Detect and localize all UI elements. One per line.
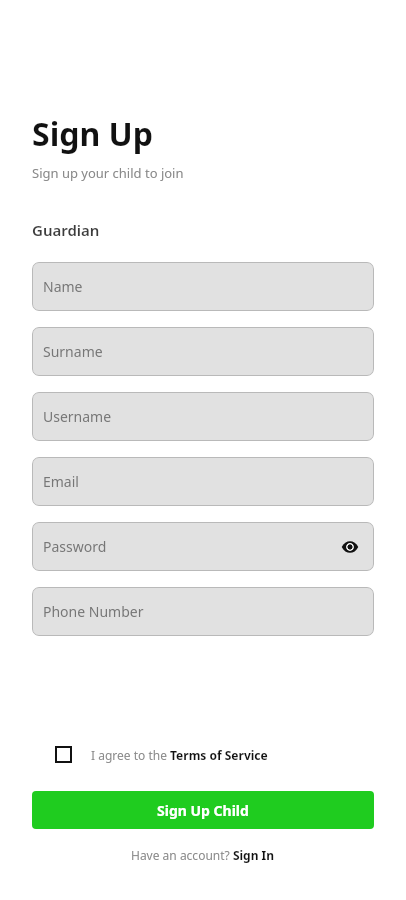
staticText: Sign Up <box>32 112 153 156</box>
staticText: I agree to the Terms of Service <box>91 747 268 763</box>
button[interactable]: Have an account? Sign In <box>0 847 406 863</box>
staticText: Surname <box>43 342 103 361</box>
staticText: Password <box>43 537 107 556</box>
button[interactable]: Surname <box>32 327 374 376</box>
button[interactable]: Show password <box>338 535 362 559</box>
button[interactable]: Password <box>32 522 374 571</box>
staticText: Sign Up Child <box>157 801 249 820</box>
staticText: Username <box>43 407 112 426</box>
button[interactable]: Name <box>32 262 374 311</box>
staticText: Have an account? Sign In <box>131 847 275 863</box>
staticText: Sign up your child to join <box>32 164 184 182</box>
staticText: Name <box>43 277 83 296</box>
staticText: Guardian <box>32 220 100 240</box>
button[interactable]: I agree to the Terms of Service <box>55 746 374 763</box>
staticText: Phone Number <box>43 602 144 621</box>
button[interactable]: Username <box>32 392 374 441</box>
button[interactable]: Sign Up Child <box>32 791 374 829</box>
button[interactable]: Phone Number <box>32 587 374 636</box>
staticText: Email <box>43 472 79 491</box>
button[interactable]: Email <box>32 457 374 506</box>
